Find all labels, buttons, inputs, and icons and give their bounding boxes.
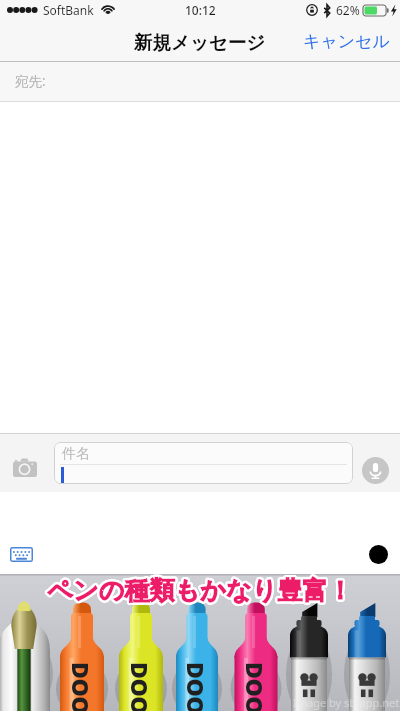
staticText: ペンの種類もかなり豊富！: [47, 575, 353, 606]
staticText: ペンの種類もかなり豊富！: [46, 577, 352, 608]
staticText: 62%: [336, 2, 360, 18]
button[interactable]: Take photo: [13, 458, 41, 480]
staticText: DOO: [240, 662, 271, 711]
staticText: 10:12: [185, 2, 216, 18]
staticText: ペンの種類もかなり豊富！: [49, 576, 355, 607]
staticText: SoftBank: [43, 2, 94, 18]
staticText: DOO: [66, 662, 97, 711]
button[interactable]: 件名: [54, 442, 353, 484]
staticText: ペンの種類もかなり豊富！: [48, 573, 354, 604]
staticText: 件名: [62, 445, 90, 463]
staticText: DOO: [181, 662, 212, 711]
button[interactable]: Record: [369, 545, 388, 564]
button[interactable]: Keyboard: [10, 547, 33, 562]
button[interactable]: 宛先:: [0, 62, 400, 102]
staticText: キャンセル: [303, 31, 390, 52]
button[interactable]: キャンセル: [291, 20, 400, 62]
staticText: ペンの種類もかなり豊富！: [45, 575, 351, 606]
staticText: DOO: [125, 662, 156, 711]
staticText: 新規メッセージ: [134, 31, 266, 54]
staticText: ペンの種類もかなり豊富！: [49, 574, 355, 605]
staticText: ペンの種類もかなり豊富！: [45, 574, 351, 605]
staticText: ペンの種類もかなり豊富！: [49, 575, 355, 606]
staticText: ペンの種類もかなり豊富！: [45, 576, 351, 607]
staticText: ペンの種類もかなり豊富！: [47, 577, 353, 608]
staticText: ペンの種類もかなり豊富！: [47, 573, 353, 604]
staticText: ペンの種類もかなり豊富！: [46, 573, 352, 604]
staticText: Image by sb-app.net: [293, 695, 400, 710]
staticText: 宛先:: [15, 72, 46, 90]
staticText: ペンの種類もかなり豊富！: [48, 577, 354, 608]
button[interactable]: Record voice message: [362, 457, 389, 484]
